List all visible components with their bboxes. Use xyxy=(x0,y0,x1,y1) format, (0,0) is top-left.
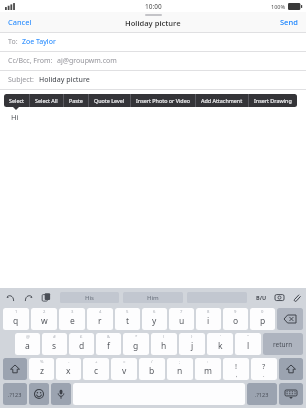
button[interactable]: ' xyxy=(207,333,233,355)
button[interactable]: Cancel xyxy=(0,12,40,32)
staticText: . xyxy=(263,371,265,378)
button[interactable]: - xyxy=(56,358,81,380)
button[interactable]: & xyxy=(96,333,121,355)
staticText: Select xyxy=(9,97,24,104)
staticText: x xyxy=(66,365,71,377)
button[interactable]: Emoji xyxy=(29,383,49,405)
button[interactable]: # xyxy=(42,333,67,355)
button[interactable]: 2 xyxy=(31,308,57,330)
button[interactable]: ; xyxy=(167,358,193,380)
staticText: Send xyxy=(280,17,298,27)
button[interactable]: 4 xyxy=(87,308,113,330)
staticText: His xyxy=(85,294,95,302)
button[interactable]: : xyxy=(195,358,221,380)
button[interactable]: / xyxy=(139,358,165,380)
staticText: , xyxy=(236,371,238,378)
button[interactable]: Him xyxy=(123,292,183,303)
button[interactable]: To: xyxy=(0,33,306,51)
button[interactable]: ) xyxy=(179,333,205,355)
staticText: v xyxy=(122,365,127,377)
button[interactable]: " xyxy=(235,333,261,355)
button[interactable]: Format xyxy=(255,294,268,301)
button[interactable]: Add Attachment xyxy=(196,94,248,107)
staticText: g xyxy=(133,340,139,352)
button[interactable]: .?123 xyxy=(3,383,27,405)
button[interactable]: £ xyxy=(69,333,94,355)
button[interactable]: Quote Level xyxy=(89,94,130,107)
staticText: w xyxy=(41,315,48,327)
button[interactable]: + xyxy=(83,358,109,380)
staticText: B/U xyxy=(256,294,267,301)
staticText: ? xyxy=(262,361,266,371)
button[interactable]: 8 xyxy=(196,308,221,330)
button[interactable]: = xyxy=(111,358,137,380)
button[interactable]: ! xyxy=(223,358,249,380)
staticText: Zoe Taylor xyxy=(22,37,56,47)
staticText: To: xyxy=(8,37,18,47)
staticText: : xyxy=(207,359,209,365)
button[interactable]: Select xyxy=(4,94,29,107)
button[interactable]: ? xyxy=(251,358,277,380)
staticText: * xyxy=(135,334,138,340)
staticText: b xyxy=(149,365,155,377)
button[interactable]: Shift xyxy=(279,358,303,380)
button[interactable]: Select All xyxy=(30,94,63,107)
staticText: u xyxy=(179,315,185,327)
button[interactable]: ( xyxy=(151,333,177,355)
button[interactable]: 7 xyxy=(169,308,194,330)
button[interactable]: His xyxy=(60,292,119,303)
button[interactable]: Copy xyxy=(40,291,52,303)
staticText: ! xyxy=(235,361,238,371)
button[interactable]: Cc/Bcc, From: xyxy=(0,52,306,70)
button[interactable]: Paste xyxy=(64,94,88,107)
button[interactable]: Dictate xyxy=(51,383,71,405)
staticText: l xyxy=(247,340,250,352)
staticText: aj@groupwm.com xyxy=(57,56,117,66)
button[interactable]: Undo xyxy=(4,291,16,303)
button[interactable]: Redo xyxy=(22,291,34,303)
staticText: 4 xyxy=(99,309,102,315)
button[interactable]: .?123 xyxy=(247,383,277,405)
staticText: ; xyxy=(179,359,181,365)
button[interactable]: 9 xyxy=(223,308,248,330)
button[interactable]: Insert Drawing xyxy=(249,94,297,107)
staticText: Select All xyxy=(35,97,58,104)
staticText: 2 xyxy=(43,309,46,315)
button[interactable]: Camera xyxy=(273,291,285,303)
button[interactable]: Insert Photo or Video xyxy=(131,94,195,107)
button[interactable]: 6 xyxy=(142,308,167,330)
button[interactable]: return xyxy=(263,333,303,355)
staticText: £ xyxy=(80,334,83,340)
staticText: & xyxy=(107,334,111,340)
staticText: ) xyxy=(191,334,193,340)
button[interactable]: Backspace xyxy=(277,308,303,330)
button[interactable]: 5 xyxy=(115,308,140,330)
staticText: % xyxy=(40,359,44,365)
button[interactable]: Attach xyxy=(290,291,302,303)
button[interactable]: Subject: xyxy=(0,71,306,89)
staticText: / xyxy=(151,359,153,365)
staticText: Insert Photo or Video xyxy=(136,97,190,104)
staticText: z xyxy=(40,365,44,377)
staticText: ' xyxy=(220,334,221,340)
button[interactable]: 3 xyxy=(59,308,85,330)
button[interactable]: Send xyxy=(272,12,306,32)
staticText: 100% xyxy=(271,3,286,10)
button[interactable]: 1 xyxy=(3,308,29,330)
button[interactable]: % xyxy=(29,358,54,380)
staticText: Holiday picture xyxy=(125,18,181,28)
button[interactable]: * xyxy=(123,333,149,355)
staticText: .?123 xyxy=(8,391,22,398)
staticText: a xyxy=(25,340,30,352)
staticText: 3 xyxy=(71,309,74,315)
button[interactable]: @ xyxy=(15,333,40,355)
staticText: i xyxy=(207,315,210,327)
staticText: return xyxy=(273,340,293,349)
button[interactable]: Shift xyxy=(3,358,27,380)
button[interactable]: Hide keyboard xyxy=(279,383,303,405)
staticText: ( xyxy=(163,334,165,340)
staticText: @ xyxy=(26,334,30,340)
button[interactable]: 0 xyxy=(250,308,275,330)
